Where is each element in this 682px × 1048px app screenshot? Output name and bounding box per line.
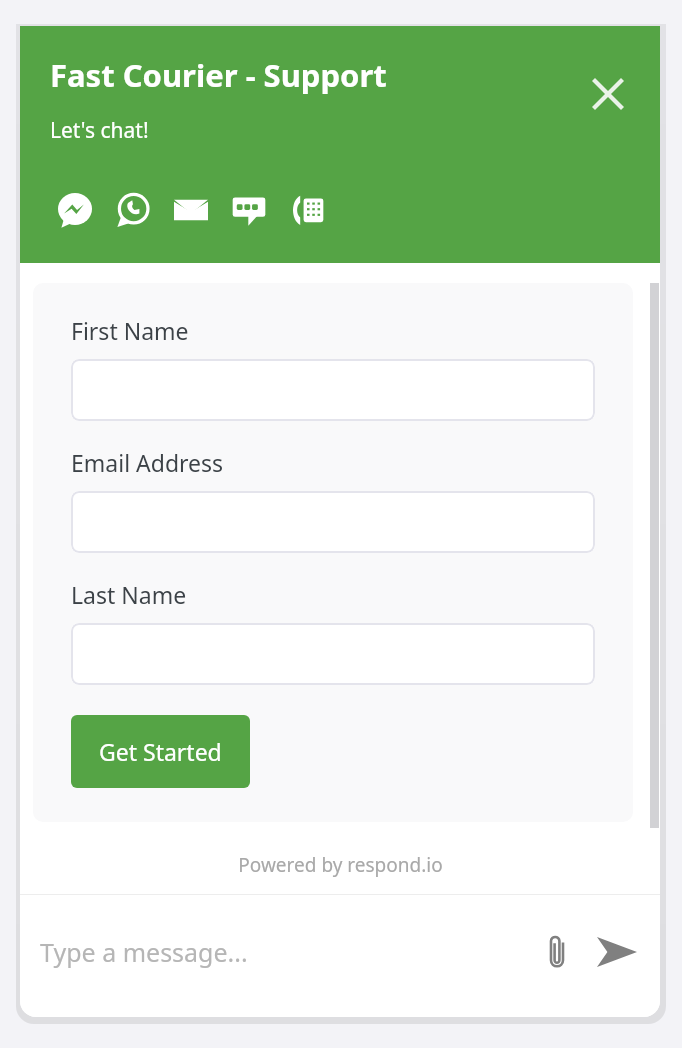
button[interactable]: Call xyxy=(278,181,336,239)
button[interactable]: SMS xyxy=(220,181,278,239)
button[interactable]: WhatsApp xyxy=(104,181,162,239)
staticText: Email Address xyxy=(71,447,224,478)
staticText: Let's chat! xyxy=(50,116,149,145)
staticText: Last Name xyxy=(71,579,187,610)
button[interactable] xyxy=(71,491,595,553)
button[interactable]: Send xyxy=(590,925,644,979)
staticText: First Name xyxy=(71,315,189,346)
button[interactable]: Messenger xyxy=(46,181,104,239)
button[interactable] xyxy=(71,359,595,421)
button[interactable] xyxy=(71,623,595,685)
button[interactable]: Attach file xyxy=(532,927,582,977)
button[interactable]: Email xyxy=(162,181,220,239)
button[interactable]: Close xyxy=(582,68,634,120)
button[interactable]: Get Started xyxy=(71,715,250,788)
staticText: Type a message... xyxy=(40,935,248,969)
staticText: Fast Courier - Support xyxy=(50,54,387,96)
staticText: Powered by respond.io xyxy=(238,852,443,878)
staticText: Get Started xyxy=(99,736,222,767)
